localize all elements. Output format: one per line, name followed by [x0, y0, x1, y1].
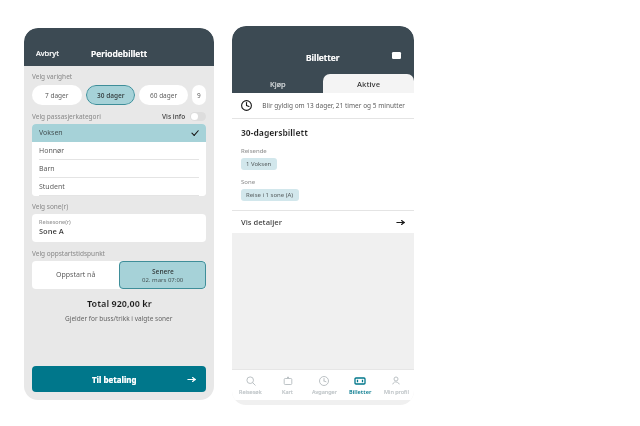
button[interactable]: Aktive [323, 74, 414, 93]
staticText: 30-dagersbillett [241, 127, 308, 139]
staticText: Velg sone(r) [32, 202, 69, 211]
button[interactable]: Barn [32, 160, 206, 178]
button[interactable]: Reisesøk [232, 370, 269, 400]
staticText: Avbryt [36, 48, 59, 58]
staticText: Kjøp [270, 79, 286, 89]
staticText: Aktive [357, 79, 381, 89]
button[interactable]: Vis info [162, 112, 206, 121]
staticText: 30 dager [97, 91, 125, 100]
staticText: Reisende [241, 147, 267, 155]
staticText: Barn [39, 164, 55, 174]
staticText: Blir gyldig om 13 dager, 21 timer og 5 m… [260, 101, 405, 110]
button[interactable]: 9 [192, 85, 206, 105]
button[interactable]: 7 dager [32, 85, 82, 105]
button[interactable]: Avbryt [34, 46, 61, 60]
staticText: Min profil [384, 388, 409, 395]
button[interactable]: Kjøp [232, 74, 323, 93]
staticText: 02. mars 07:00 [142, 276, 184, 284]
staticText: Student [39, 182, 65, 192]
staticText: Velg passasjerkategori [32, 112, 101, 121]
button[interactable]: Student [32, 178, 206, 196]
staticText: 1 Voksen [246, 160, 272, 168]
staticText: Avganger [312, 388, 337, 395]
button[interactable]: Til betaling [32, 366, 206, 392]
staticText: Sone [241, 178, 256, 186]
staticText: Vis info [162, 112, 186, 121]
staticText: Kart [282, 388, 293, 395]
staticText: Velg oppstartstidspunkt [32, 249, 105, 258]
staticText: Honnør [39, 146, 65, 156]
button[interactable]: 30 dager [86, 85, 135, 105]
staticText: 7 dager [45, 91, 69, 100]
staticText: Velg varighet [32, 72, 73, 81]
staticText: Sone A [39, 226, 64, 236]
staticText: Voksen [39, 128, 63, 138]
staticText: Total 920,00 kr [87, 297, 152, 309]
staticText: Til betaling [92, 374, 137, 385]
button[interactable]: Meldinger [390, 50, 402, 62]
staticText: Billetter [306, 52, 340, 64]
button[interactable]: 60 dager [139, 85, 188, 105]
staticText: 9 [197, 91, 201, 100]
staticText: 60 dager [150, 91, 178, 100]
button[interactable]: Senere [119, 261, 206, 289]
staticText: Gjelder for buss/trikk i valgte soner [65, 314, 173, 323]
staticText: Billetter [349, 388, 372, 395]
button[interactable]: Kart [269, 370, 306, 400]
button[interactable]: Min profil [378, 370, 414, 400]
staticText: Senere [152, 267, 174, 276]
button[interactable]: Voksen [32, 124, 206, 142]
staticText: Reise i 1 sone (A) [246, 191, 294, 199]
button[interactable]: Billetter [342, 370, 378, 400]
button[interactable]: Reisesone(r) [32, 214, 206, 242]
staticText: Reisesone(r) [39, 218, 71, 225]
button[interactable]: Avganger [306, 370, 342, 400]
button[interactable]: Honnør [32, 142, 206, 160]
staticText: Oppstart nå [56, 270, 96, 280]
button[interactable]: Vis detaljer [232, 211, 414, 233]
staticText: Reisesøk [239, 388, 262, 395]
staticText: Vis detaljer [241, 217, 282, 227]
staticText: Periodebillett [91, 48, 148, 60]
button[interactable]: Oppstart nå [32, 261, 119, 289]
